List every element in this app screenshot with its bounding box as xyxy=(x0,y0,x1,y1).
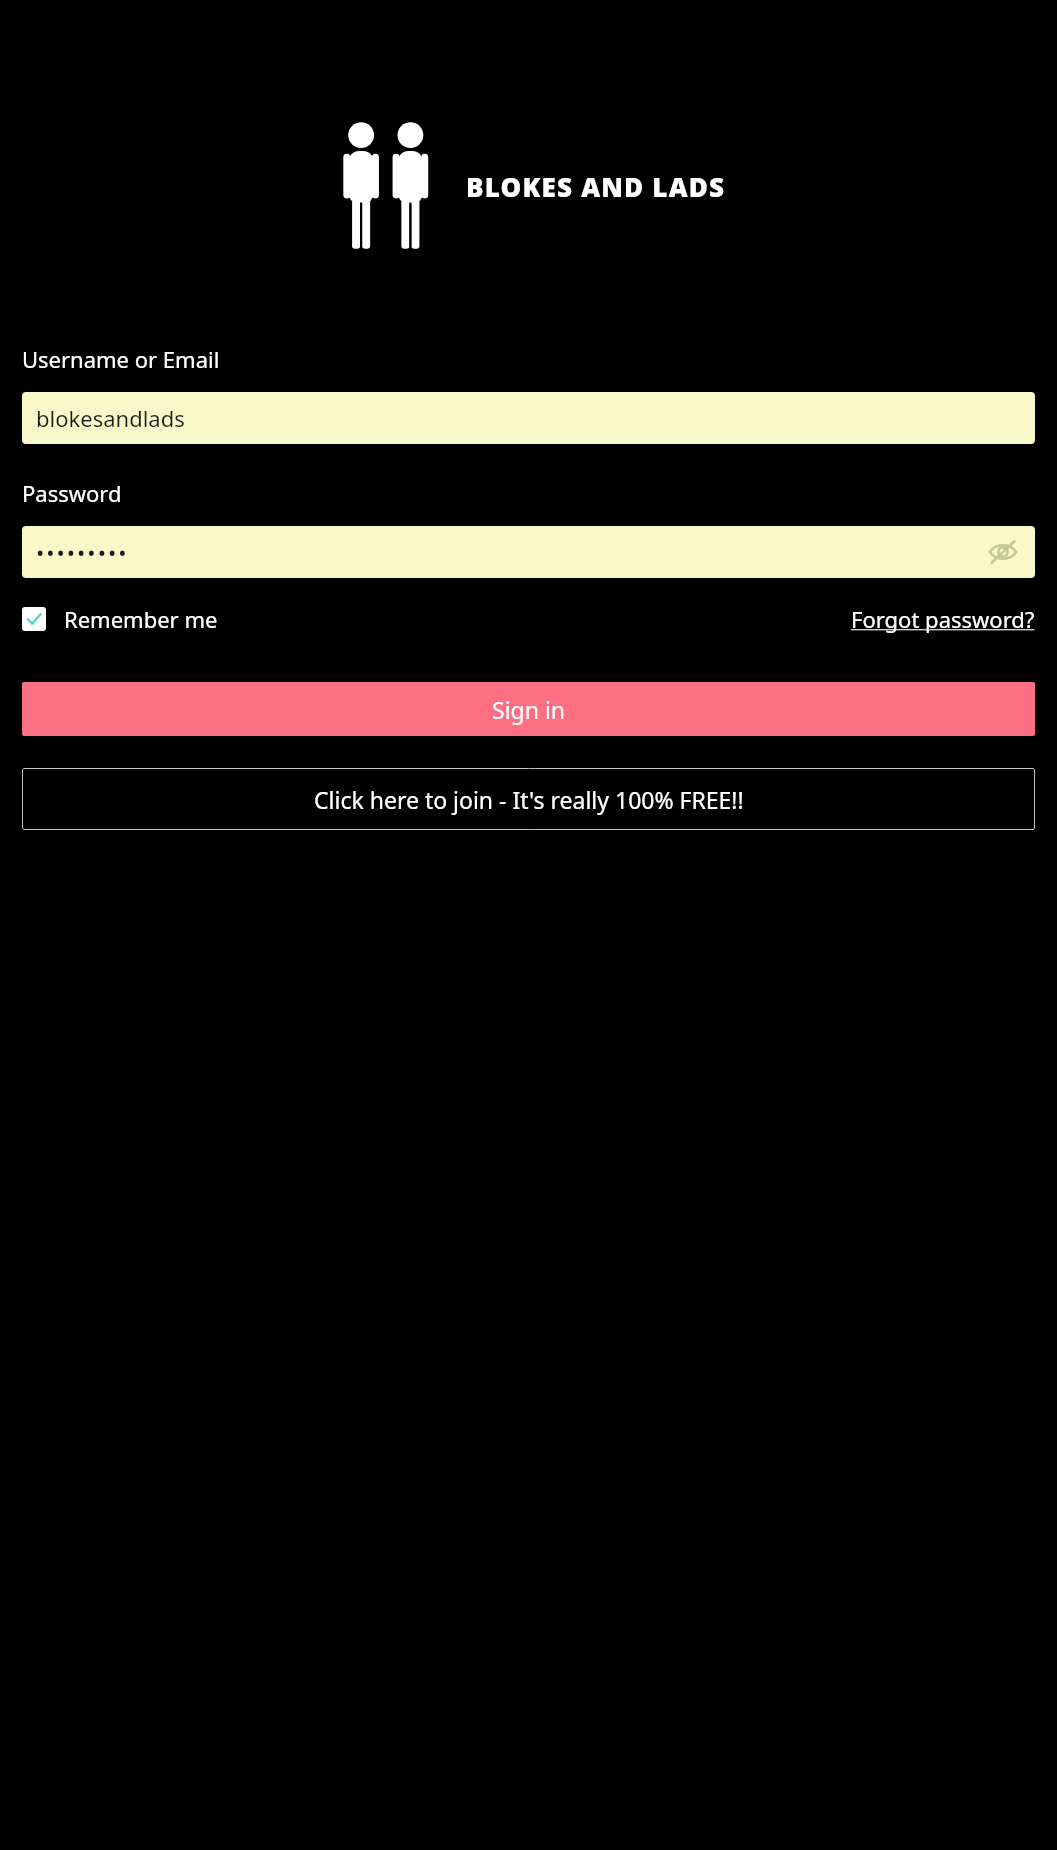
button[interactable]: Click here to join - It's really 100% FR… xyxy=(22,768,1035,830)
staticText: BLOKES AND LADS xyxy=(466,169,726,204)
button[interactable]: Forgot password? xyxy=(851,604,1035,634)
button[interactable]: Show password xyxy=(981,530,1025,574)
staticText: Sign in xyxy=(492,694,566,725)
button[interactable]: Remember me xyxy=(22,604,218,634)
staticText: Forgot password? xyxy=(851,604,1035,634)
staticText: ••••••••• xyxy=(36,537,129,567)
staticText: Username or Email xyxy=(22,344,220,374)
staticText: Click here to join - It's really 100% FR… xyxy=(314,784,744,815)
staticText: Password xyxy=(22,478,122,508)
button[interactable]: blokesandlads xyxy=(22,392,1035,444)
button[interactable]: Sign in xyxy=(22,682,1035,736)
staticText: Remember me xyxy=(64,604,218,634)
button[interactable]: ••••••••• xyxy=(22,526,1035,578)
staticText: blokesandlads xyxy=(36,403,185,433)
